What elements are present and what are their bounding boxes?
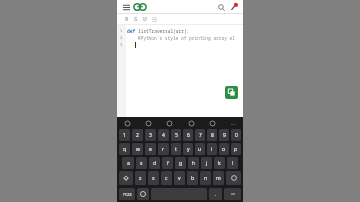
staticText: c — [165, 175, 168, 182]
button[interactable]: s — [136, 157, 147, 169]
staticText: #Python's style of printing array el — [127, 35, 235, 41]
button[interactable]: q — [119, 143, 130, 155]
button[interactable]: n — [200, 171, 211, 185]
button[interactable]: Menu — [121, 2, 131, 12]
staticText: 2 — [136, 132, 139, 139]
button[interactable]: c — [161, 171, 172, 185]
button[interactable]: 8 — [207, 129, 217, 141]
staticText: G — [134, 16, 138, 23]
staticText: q — [123, 146, 127, 153]
button[interactable]: y — [183, 143, 193, 155]
staticText: ?123 — [123, 192, 132, 197]
button[interactable]: r — [158, 143, 169, 155]
staticText: b — [191, 175, 195, 182]
button[interactable]: h — [188, 157, 199, 169]
staticText: w — [136, 146, 140, 153]
button[interactable]: b — [187, 171, 198, 185]
staticText: d — [153, 160, 157, 167]
staticText: v — [178, 175, 181, 182]
staticText: 2 — [120, 35, 123, 40]
button[interactable]: g — [175, 157, 186, 169]
staticText: 9 — [223, 132, 226, 139]
button[interactable]: t — [171, 143, 181, 155]
button[interactable]: Symbols — [119, 188, 135, 200]
staticText: f — [167, 160, 169, 167]
staticText: e — [149, 146, 152, 153]
staticText: z — [139, 175, 142, 182]
button[interactable]: x — [148, 171, 159, 185]
staticText: 3 — [120, 42, 123, 47]
button[interactable]: e — [145, 143, 156, 155]
staticText: p — [234, 146, 238, 153]
button[interactable]: Keyboard tool 1 — [123, 119, 131, 127]
button[interactable]: l — [227, 157, 238, 169]
button[interactable]: Enter — [224, 188, 241, 200]
button[interactable]: GeeksforGeeks home — [133, 2, 147, 12]
button[interactable]: 7 — [195, 129, 205, 141]
button[interactable]: Emoji — [137, 188, 149, 200]
button[interactable]: v — [174, 171, 185, 185]
staticText: k — [218, 160, 221, 167]
button[interactable]: u — [195, 143, 205, 155]
button[interactable]: 2 — [132, 129, 143, 141]
staticText: n — [204, 175, 208, 182]
staticText: o — [222, 146, 226, 153]
button[interactable]: d — [149, 157, 160, 169]
button[interactable]: Backspace — [226, 171, 241, 185]
staticText: s — [140, 160, 143, 167]
button[interactable]: U — [141, 15, 149, 23]
button[interactable]: 4 — [158, 129, 169, 141]
staticText: ... — [231, 120, 236, 127]
button[interactable]: Copy code — [225, 86, 238, 99]
staticText: g — [179, 160, 183, 167]
staticText: 4 — [162, 132, 165, 139]
button[interactable]: Period — [209, 188, 222, 200]
button[interactable]: Keyboard tool 3 — [165, 119, 173, 127]
staticText: x — [152, 175, 155, 182]
staticText: u — [198, 146, 202, 153]
button[interactable]: m — [213, 171, 224, 185]
staticText: h — [192, 160, 196, 167]
staticText: 0 — [235, 132, 238, 139]
staticText: 6 — [187, 132, 190, 139]
staticText: listTraversal(arr): — [138, 28, 190, 34]
staticText: t — [175, 146, 177, 153]
button[interactable]: 3 — [145, 129, 156, 141]
button[interactable]: j — [201, 157, 212, 169]
button[interactable]: Keyboard tool 4 — [187, 119, 195, 127]
staticText: def — [127, 28, 138, 34]
button[interactable]: i — [207, 143, 217, 155]
staticText: 8 — [211, 132, 214, 139]
staticText: 7 — [199, 132, 202, 139]
button[interactable]: List — [150, 15, 158, 23]
staticText: j — [206, 160, 208, 167]
button[interactable]: a — [122, 157, 134, 169]
button[interactable]: Search — [216, 2, 226, 12]
button[interactable]: G — [132, 15, 140, 23]
staticText: i — [211, 146, 213, 153]
staticText: 3 — [149, 132, 152, 139]
button[interactable]: Shift — [119, 171, 133, 185]
button[interactable]: B — [123, 15, 131, 23]
button[interactable]: k — [214, 157, 225, 169]
staticText: . — [215, 191, 217, 198]
button[interactable]: More options — [229, 119, 237, 127]
button[interactable]: Keyboard tool 5 — [208, 119, 216, 127]
button[interactable]: o — [219, 143, 229, 155]
button[interactable]: 9 — [219, 129, 229, 141]
button[interactable]: 0 — [231, 129, 241, 141]
button[interactable]: Notifications — [229, 2, 239, 12]
staticText: l — [232, 160, 234, 167]
button[interactable]: w — [132, 143, 143, 155]
button[interactable]: 1 — [119, 129, 130, 141]
button[interactable]: Keyboard tool 2 — [144, 119, 152, 127]
staticText: B — [125, 16, 129, 23]
button[interactable]: 6 — [183, 129, 193, 141]
staticText: m — [216, 175, 221, 182]
button[interactable]: 5 — [171, 129, 181, 141]
button[interactable]: p — [231, 143, 241, 155]
button[interactable]: f — [162, 157, 173, 169]
staticText: r — [162, 146, 165, 153]
button[interactable]: z — [135, 171, 146, 185]
